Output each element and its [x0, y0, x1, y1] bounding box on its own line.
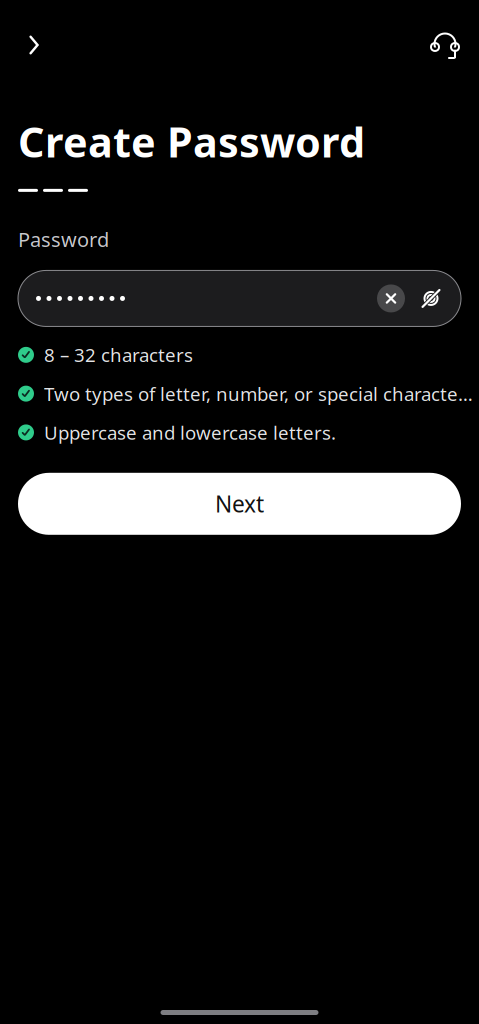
- staticText: Two types of letter, number, or special …: [44, 381, 479, 406]
- button[interactable]: Next: [18, 473, 461, 535]
- button[interactable]: Show password: [411, 278, 451, 318]
- staticText: Uppercase and lowercase letters.: [44, 420, 336, 445]
- staticText: 8 – 32 characters: [44, 342, 193, 367]
- staticText: Next: [215, 489, 264, 519]
- button[interactable]: Back: [11, 22, 57, 68]
- button[interactable]: Clear text: [371, 278, 411, 318]
- staticText: Create Password: [18, 114, 365, 169]
- button[interactable]: Customer support: [422, 22, 468, 68]
- staticText: Password: [18, 226, 109, 252]
